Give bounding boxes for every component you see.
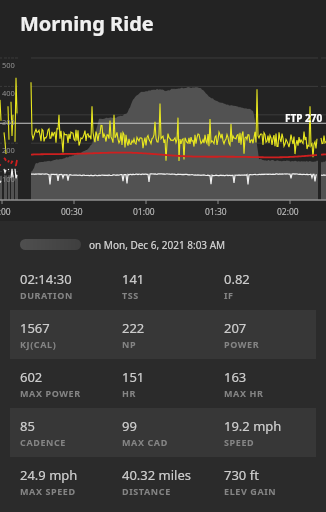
staticText: 40.32 miles	[122, 466, 192, 484]
staticText: ELEV GAIN	[224, 485, 277, 497]
staticText: 02:14:30	[20, 270, 72, 288]
staticText: DISTANCE	[122, 485, 171, 497]
button[interactable]: 163	[214, 359, 316, 399]
staticText: 99	[122, 417, 137, 435]
button[interactable]: 99	[112, 408, 214, 448]
button[interactable]: 602	[10, 359, 112, 399]
staticText: MAX SPEED	[20, 485, 76, 497]
staticText: POWER	[224, 338, 260, 350]
staticText: 207	[224, 319, 247, 337]
button[interactable]: 0.82	[214, 261, 316, 301]
staticText: 19.2 mph	[224, 417, 282, 435]
staticText: 141	[122, 270, 145, 288]
staticText: 400	[2, 88, 15, 98]
staticText: 500	[2, 60, 15, 70]
staticText: 00:00	[0, 206, 11, 218]
staticText: MAX HR	[224, 387, 264, 399]
staticText: IF	[224, 289, 234, 301]
staticText: 200	[2, 145, 15, 155]
button[interactable]: 40.32 miles	[112, 457, 214, 497]
staticText: 151	[122, 368, 145, 386]
staticText: FTP 270	[285, 111, 323, 125]
button[interactable]: 1567	[10, 310, 112, 350]
staticText: 163	[224, 368, 247, 386]
staticText: 1567	[20, 319, 50, 337]
staticText: 100	[2, 174, 15, 184]
button[interactable]: 141	[112, 261, 214, 301]
staticText: TSS	[122, 289, 139, 301]
staticText: KJ(CAL)	[20, 338, 57, 350]
staticText: 01:00	[133, 206, 155, 218]
staticText: MAX POWER	[20, 387, 81, 399]
staticText: NP	[122, 338, 137, 350]
staticText: MAX CAD	[122, 436, 168, 448]
button[interactable]: 151	[112, 359, 214, 399]
staticText: 00:30	[61, 206, 83, 218]
staticText: 85	[20, 417, 35, 435]
staticText: 602	[20, 368, 43, 386]
staticText: 0.82	[224, 270, 250, 288]
button[interactable]: 19.2 mph	[214, 408, 316, 448]
button[interactable]: 02:14:30	[10, 261, 112, 301]
staticText: 01:30	[205, 206, 227, 218]
staticText: 300	[2, 117, 15, 127]
button[interactable]: 24.9 mph	[10, 457, 112, 497]
button[interactable]: 222	[112, 310, 214, 350]
staticText: on Mon, Dec 6, 2021 8:03 AM	[89, 238, 226, 250]
staticText: 02:00	[277, 206, 299, 218]
button[interactable]: 730 ft	[214, 457, 316, 497]
staticText: CADENCE	[20, 436, 66, 448]
staticText: 730 ft	[224, 466, 259, 484]
staticText: 24.9 mph	[20, 466, 78, 484]
staticText: HR	[122, 387, 136, 399]
staticText: DURATION	[20, 289, 73, 301]
staticText: 222	[122, 319, 145, 337]
button[interactable]: 207	[214, 310, 316, 350]
button[interactable]: 85	[10, 408, 112, 448]
staticText: Morning Ride	[20, 10, 154, 37]
staticText: SPEED	[224, 436, 255, 448]
